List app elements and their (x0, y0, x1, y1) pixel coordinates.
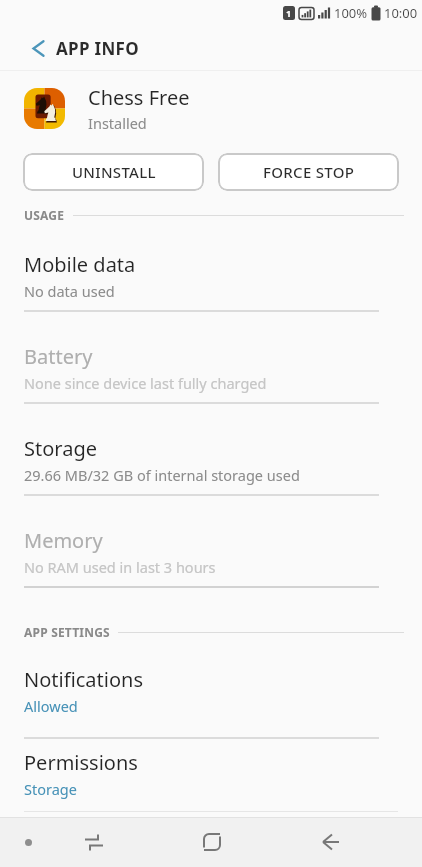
staticText: 100% (334, 4, 368, 22)
staticText: Chess Free (88, 84, 190, 111)
button[interactable] (74, 822, 114, 862)
button[interactable]: Mobile data (0, 251, 422, 312)
staticText: Permissions (24, 749, 138, 776)
button[interactable]: Permissions (0, 749, 422, 812)
button[interactable]: UNINSTALL (23, 153, 204, 191)
button[interactable]: Notifications (0, 666, 422, 739)
staticText: Allowed (24, 696, 78, 716)
staticText: 1 (286, 7, 292, 19)
staticText: 10:00 (384, 4, 418, 22)
staticText: 29.66 MB/32 GB of internal storage used (24, 465, 300, 485)
staticText: No data used (24, 281, 115, 301)
button[interactable]: Storage (0, 435, 422, 496)
button[interactable] (192, 822, 232, 862)
button[interactable]: FORCE STOP (218, 153, 399, 191)
button[interactable]: Memory (0, 527, 422, 588)
staticText: No RAM used in last 3 hours (24, 557, 216, 577)
staticText: None since device last fully charged (24, 373, 267, 393)
staticText: Memory (24, 527, 103, 554)
staticText: Storage (24, 435, 97, 462)
staticText: Mobile data (24, 251, 136, 278)
button[interactable] (21, 835, 35, 849)
staticText: APP INFO (56, 37, 139, 60)
staticText: Installed (88, 113, 147, 133)
staticText: FORCE STOP (263, 162, 355, 182)
staticText: Notifications (24, 666, 143, 693)
button[interactable] (0, 26, 48, 70)
staticText: UNINSTALL (72, 162, 156, 182)
button[interactable] (310, 822, 350, 862)
staticText: Battery (24, 343, 93, 370)
staticText: APP SETTINGS (24, 624, 110, 640)
button[interactable]: Battery (0, 343, 422, 404)
staticText: Storage (24, 779, 77, 799)
staticText: USAGE (24, 207, 65, 223)
